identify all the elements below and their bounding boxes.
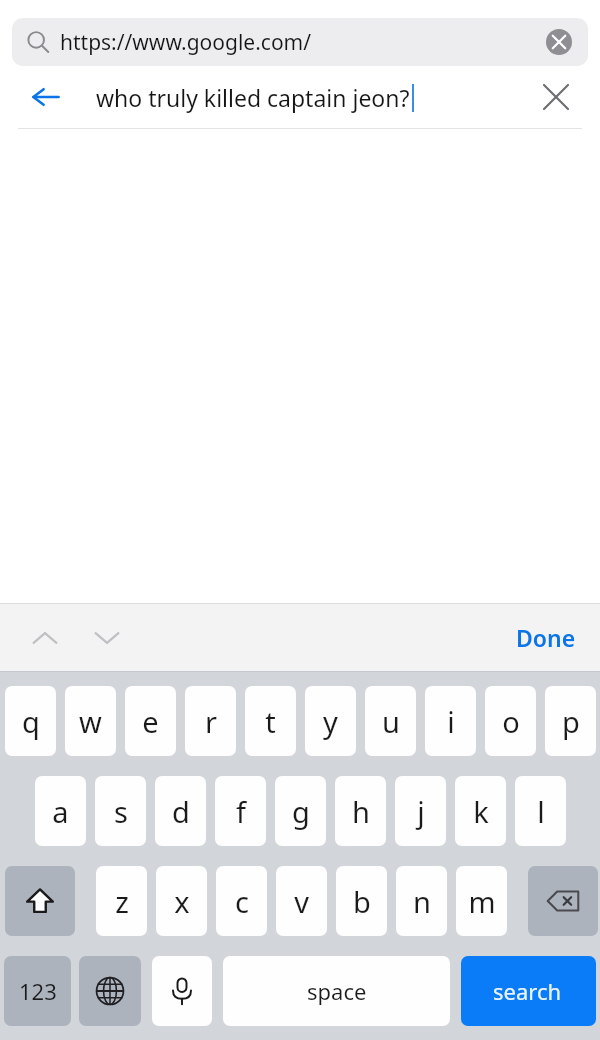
staticText: c <box>235 882 249 921</box>
staticText: q <box>22 702 40 741</box>
button[interactable]: b <box>336 866 387 936</box>
staticText: who truly killed captain jeon? <box>96 82 410 113</box>
button[interactable]: Clear search <box>534 75 578 119</box>
button[interactable]: z <box>96 866 147 936</box>
button[interactable]: h <box>335 776 386 846</box>
staticText: e <box>142 702 159 741</box>
button[interactable]: e <box>125 686 176 756</box>
button[interactable]: a <box>35 776 86 846</box>
staticText: t <box>265 702 276 741</box>
button[interactable]: p <box>545 686 596 756</box>
button[interactable]: j <box>395 776 446 846</box>
button[interactable]: k <box>455 776 506 846</box>
staticText: a <box>52 792 69 831</box>
staticText: b <box>353 882 371 921</box>
staticText: r <box>205 702 217 741</box>
button[interactable]: 123 <box>4 956 71 1026</box>
staticText: l <box>537 792 545 831</box>
staticText: v <box>294 882 309 921</box>
staticText: x <box>174 882 190 921</box>
staticText: f <box>236 792 246 831</box>
staticText: i <box>447 702 455 741</box>
button[interactable]: o <box>485 686 536 756</box>
staticText: search <box>493 976 562 1006</box>
button[interactable]: c <box>216 866 267 936</box>
button[interactable]: Clear address <box>542 25 576 59</box>
button[interactable]: space <box>223 956 450 1026</box>
staticText: https://www.google.com/ <box>60 28 312 57</box>
staticText: w <box>79 702 102 741</box>
staticText: g <box>292 792 310 831</box>
button[interactable]: search <box>461 956 596 1026</box>
button[interactable]: Shift <box>5 866 75 936</box>
staticText: o <box>502 702 520 741</box>
button[interactable]: Change keyboard <box>79 956 141 1026</box>
button[interactable]: f <box>215 776 266 846</box>
staticText: Done <box>516 622 576 653</box>
staticText: j <box>417 792 425 831</box>
button[interactable]: l <box>515 776 566 846</box>
button[interactable]: s <box>95 776 146 846</box>
button[interactable]: Back <box>22 73 70 121</box>
button[interactable]: Next field <box>84 615 130 661</box>
staticText: m <box>468 882 496 921</box>
staticText: u <box>382 702 400 741</box>
button[interactable]: x <box>156 866 207 936</box>
staticText: n <box>413 882 431 921</box>
button[interactable]: w <box>65 686 116 756</box>
button[interactable]: m <box>456 866 507 936</box>
staticText: s <box>114 792 128 831</box>
button[interactable]: y <box>305 686 356 756</box>
staticText: p <box>562 702 580 741</box>
button[interactable]: i <box>425 686 476 756</box>
staticText: y <box>323 702 338 741</box>
button[interactable]: Done <box>510 616 582 659</box>
button[interactable]: Previous field <box>22 615 68 661</box>
button[interactable]: v <box>276 866 327 936</box>
button[interactable]: u <box>365 686 416 756</box>
button[interactable]: n <box>396 866 447 936</box>
button[interactable]: Backspace <box>528 866 598 936</box>
button[interactable]: https://www.google.com/ <box>12 18 588 66</box>
button[interactable]: t <box>245 686 296 756</box>
staticText: h <box>352 792 370 831</box>
staticText: k <box>473 792 489 831</box>
staticText: d <box>172 792 190 831</box>
staticText: space <box>307 976 367 1006</box>
button[interactable]: r <box>185 686 236 756</box>
button[interactable]: q <box>5 686 56 756</box>
button[interactable]: Voice input <box>152 956 212 1026</box>
button[interactable]: d <box>155 776 206 846</box>
staticText: 123 <box>19 976 57 1006</box>
staticText: z <box>115 882 129 921</box>
button[interactable]: g <box>275 776 326 846</box>
